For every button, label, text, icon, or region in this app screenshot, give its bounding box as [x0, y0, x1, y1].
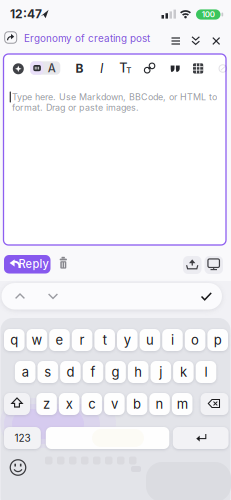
- button[interactable]: Emoji: [0, 0, 231, 500]
- staticText: I: [100, 61, 103, 76]
- button[interactable]: Discard draft: [0, 0, 231, 500]
- button[interactable]: w: [0, 0, 231, 500]
- staticText: k: [180, 364, 187, 380]
- button[interactable]: m: [0, 0, 231, 500]
- button[interactable]: Heading: [0, 0, 231, 500]
- button[interactable]: d: [0, 0, 231, 500]
- staticText: T: [119, 60, 127, 75]
- staticText: 123: [14, 432, 30, 444]
- button[interactable]: Reply indicator: [0, 0, 231, 500]
- staticText: n: [156, 396, 164, 412]
- staticText: q: [10, 332, 18, 348]
- staticText: x: [66, 396, 73, 412]
- button[interactable]: Delete: [0, 0, 231, 500]
- button[interactable]: Reply: [0, 0, 231, 500]
- staticText: a: [22, 364, 29, 380]
- button[interactable]: Numbers: [0, 0, 231, 500]
- button[interactable]: Close: [0, 0, 231, 500]
- staticText: Type here. Use Markdown, BBCode, or HTML…: [12, 92, 217, 102]
- button[interactable]: Insert: [0, 0, 231, 500]
- staticText: d: [66, 364, 74, 380]
- staticText: format. Drag or paste images.: [12, 102, 139, 113]
- staticText: e: [55, 332, 63, 348]
- staticText: s: [44, 364, 51, 380]
- button[interactable]: Toolbar options: [0, 0, 231, 500]
- button[interactable]: Blockquote: [0, 0, 231, 500]
- button[interactable]: o: [0, 0, 231, 500]
- staticText: p: [214, 332, 222, 348]
- staticText: b: [133, 396, 141, 412]
- button[interactable]: c: [0, 0, 231, 500]
- button[interactable]: Shift: [0, 0, 231, 500]
- button[interactable]: u: [0, 0, 231, 500]
- button[interactable]: b: [0, 0, 231, 500]
- button[interactable]: q: [0, 0, 231, 500]
- button[interactable]: r: [0, 0, 231, 500]
- button[interactable]: Rich text mode: [0, 0, 231, 500]
- staticText: w: [31, 332, 42, 348]
- button[interactable]: Ergonomy of creating post: [0, 0, 231, 500]
- staticText: t: [103, 332, 107, 348]
- button[interactable]: Previous field: [0, 0, 231, 500]
- button[interactable]: e: [0, 0, 231, 500]
- staticText: g: [112, 364, 120, 380]
- button[interactable]: j: [0, 0, 231, 500]
- button[interactable]: a: [0, 0, 231, 500]
- button[interactable]: Insert link: [0, 0, 231, 500]
- staticText: h: [134, 364, 142, 380]
- button[interactable]: x: [0, 0, 231, 500]
- button[interactable]: Toggle preview: [0, 0, 231, 500]
- button[interactable]: Markdown mode: [0, 0, 231, 500]
- button[interactable]: Space: [0, 0, 231, 500]
- button[interactable]: Insert table: [0, 0, 231, 500]
- staticText: l: [204, 364, 207, 380]
- staticText: i: [171, 332, 174, 348]
- staticText: T: [126, 65, 131, 75]
- button[interactable]: Done: [0, 0, 231, 500]
- staticText: y: [124, 332, 131, 348]
- button[interactable]: n: [0, 0, 231, 500]
- staticText: 100: [202, 9, 215, 19]
- button[interactable]: i: [0, 0, 231, 500]
- button[interactable]: k: [0, 0, 231, 500]
- button[interactable]: Upload: [0, 0, 231, 500]
- button[interactable]: h: [0, 0, 231, 500]
- button[interactable]: More formatting options: [0, 0, 231, 500]
- button[interactable]: l: [0, 0, 231, 500]
- staticText: A: [48, 61, 56, 75]
- button[interactable]: p: [0, 0, 231, 500]
- staticText: r: [80, 332, 85, 348]
- button[interactable]: z: [0, 0, 231, 500]
- staticText: Ergonomy of creating post: [24, 32, 150, 44]
- button[interactable]: t: [0, 0, 231, 500]
- button[interactable]: s: [0, 0, 231, 500]
- staticText: j: [159, 364, 162, 380]
- button[interactable]: Italic: [0, 0, 231, 500]
- button[interactable]: f: [0, 0, 231, 500]
- staticText: o: [191, 332, 199, 348]
- staticText: u: [146, 332, 154, 348]
- button[interactable]: y: [0, 0, 231, 500]
- staticText: B: [75, 61, 83, 76]
- staticText: f: [90, 364, 95, 380]
- button[interactable]: Bold: [0, 0, 231, 500]
- button[interactable]: g: [0, 0, 231, 500]
- staticText: 12:47: [10, 6, 42, 21]
- button[interactable]: Next field: [0, 0, 231, 500]
- button[interactable]: Return: [0, 0, 231, 500]
- staticText: Reply: [18, 257, 48, 271]
- staticText: c: [88, 396, 95, 412]
- staticText: v: [111, 396, 118, 412]
- button[interactable]: v: [0, 0, 231, 500]
- staticText: z: [43, 396, 50, 412]
- button[interactable]: Collapse composer: [0, 0, 231, 500]
- staticText: m: [177, 396, 188, 412]
